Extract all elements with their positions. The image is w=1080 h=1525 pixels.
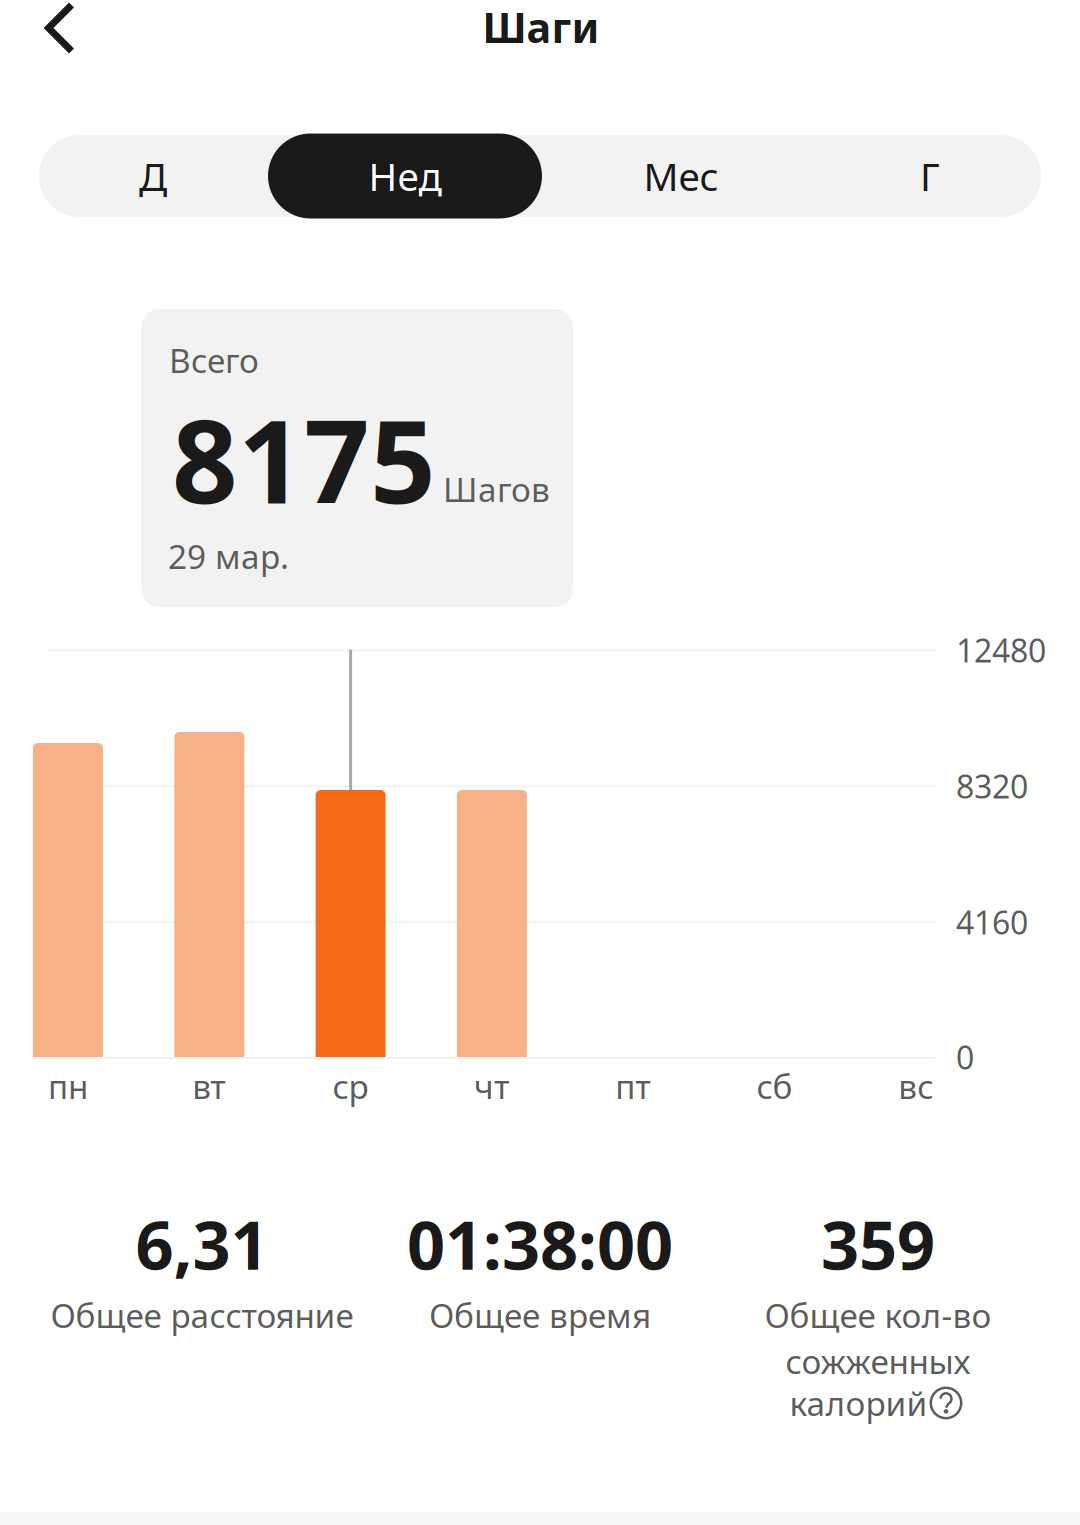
staticText: 8175	[172, 383, 436, 535]
staticText: 29 мар.	[168, 534, 289, 578]
staticText: Мес	[643, 150, 718, 202]
staticText: сожженных	[785, 1339, 970, 1383]
staticText: сб	[756, 1064, 792, 1108]
staticText: Нед	[368, 150, 441, 202]
staticText: Общее время	[429, 1293, 651, 1337]
staticText: 8320	[956, 765, 1028, 807]
staticText: чт	[474, 1064, 510, 1108]
staticText: Шаги	[482, 0, 599, 54]
staticText: пт	[615, 1064, 651, 1108]
staticText: Общее кол-во	[764, 1293, 991, 1337]
staticText: ср	[333, 1064, 369, 1108]
staticText: Г	[920, 150, 940, 202]
staticText: Всего	[169, 338, 259, 382]
staticText: Общее расстояние	[50, 1293, 353, 1337]
button[interactable]: Д	[28, 133, 278, 218]
staticText: 359	[821, 1200, 935, 1288]
button[interactable]: Подробнее о калориях	[789, 1381, 962, 1425]
staticText: вс	[898, 1064, 933, 1108]
staticText: вт	[192, 1064, 226, 1108]
staticText: 4160	[956, 901, 1028, 943]
staticText: Д	[139, 150, 167, 202]
staticText: калорий	[789, 1381, 927, 1425]
staticText: пн	[48, 1064, 88, 1108]
staticText: Шагов	[443, 467, 550, 511]
button[interactable]: Назад	[12, 0, 107, 76]
staticText: 12480	[956, 629, 1046, 671]
staticText: 0	[956, 1036, 974, 1078]
button[interactable]: Г	[805, 133, 1055, 218]
staticText: 01:38:00	[407, 1200, 673, 1288]
staticText: 6,31	[135, 1200, 268, 1288]
button[interactable]: Мес	[556, 133, 806, 218]
button[interactable]: Нед	[268, 133, 542, 218]
